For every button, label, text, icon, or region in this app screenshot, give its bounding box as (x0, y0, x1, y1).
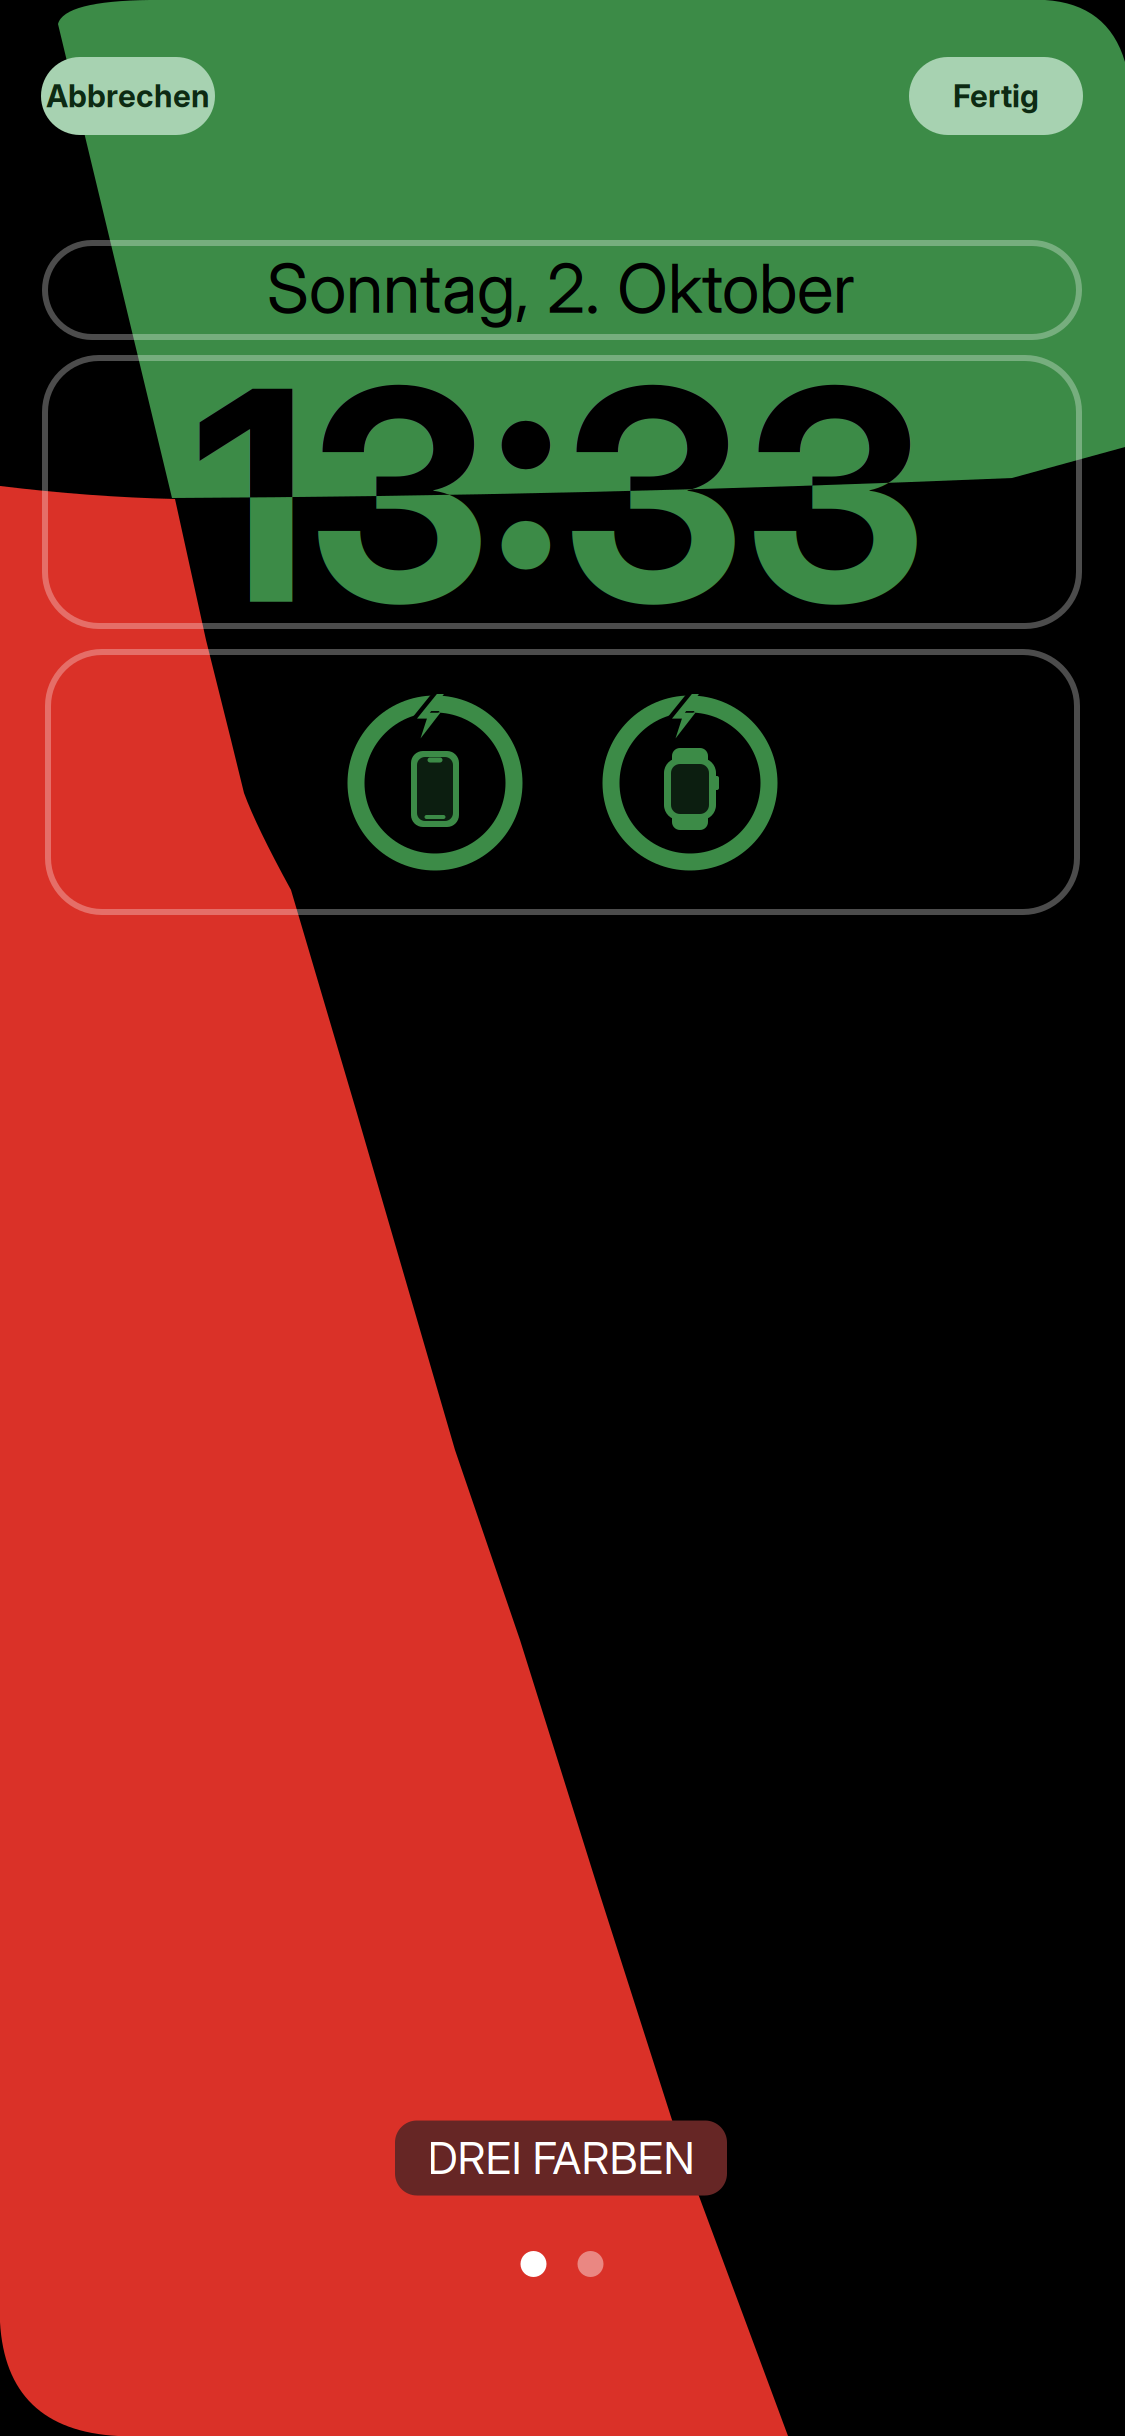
button[interactable]: DREI FARBEN (395, 2120, 727, 2195)
button[interactable]: Fertig (909, 57, 1083, 135)
staticText: DREI FARBEN (427, 2131, 694, 2185)
staticText: 13:33 (194, 317, 926, 672)
staticText: Sonntag, 2. Oktober (267, 247, 855, 329)
staticText: Abbrechen (46, 77, 210, 114)
button[interactable]: Abbrechen (41, 57, 215, 135)
staticText: Fertig (953, 77, 1039, 114)
